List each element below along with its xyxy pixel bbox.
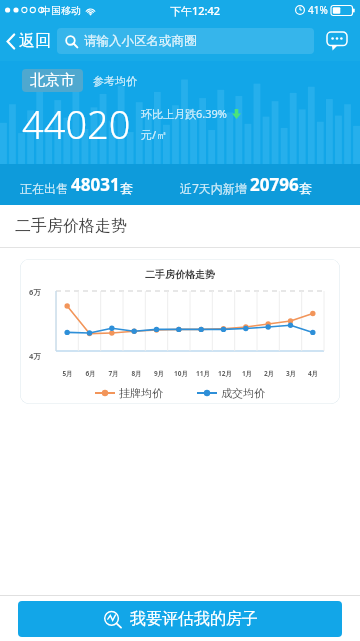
staticText: 请输入小区名或商圈: [84, 33, 197, 49]
staticText: 二手房价格走势: [20, 268, 340, 281]
staticText: 20796: [250, 173, 299, 196]
staticText: 10月: [170, 369, 192, 378]
staticText: 48031: [71, 173, 120, 196]
button[interactable]: 我要评估我的房子: [18, 601, 342, 637]
staticText: 环比上月跌6.39%: [141, 106, 227, 121]
staticText: 北京市: [30, 71, 75, 90]
staticText: 成交均价: [221, 386, 265, 400]
staticText: 我要评估我的房子: [130, 609, 258, 629]
button[interactable]: 近7天内新增: [180, 173, 360, 196]
staticText: 参考均价: [93, 74, 137, 88]
staticText: 正在出售: [20, 181, 68, 196]
staticText: 44020: [22, 98, 131, 150]
staticText: 8月: [125, 369, 148, 378]
button[interactable]: 消息: [322, 26, 352, 56]
staticText: 6万: [29, 287, 41, 297]
staticText: 12月: [214, 369, 236, 378]
staticText: 挂牌均价: [119, 386, 163, 400]
button[interactable]: 请输入小区名或商圈: [57, 28, 314, 54]
staticText: 7月: [102, 369, 125, 378]
staticText: 下午12:42: [170, 3, 221, 18]
staticText: 中国移动: [41, 4, 81, 17]
staticText: 4万: [29, 351, 41, 361]
staticText: 套: [120, 180, 133, 196]
staticText: 2月: [258, 369, 280, 378]
staticText: 9月: [148, 369, 170, 378]
staticText: 返回: [19, 31, 51, 51]
staticText: 41%: [308, 3, 328, 17]
button[interactable]: 二手房价格走势: [20, 259, 340, 404]
staticText: 6月: [79, 369, 102, 378]
staticText: 1月: [236, 369, 258, 378]
staticText: 元/㎡: [141, 127, 168, 142]
staticText: 3月: [280, 369, 302, 378]
button[interactable]: 二手房价格走势: [0, 205, 360, 247]
staticText: 11月: [192, 369, 214, 378]
button[interactable]: 返回: [0, 25, 57, 57]
button[interactable]: 北京市: [22, 69, 83, 92]
staticText: 套: [299, 180, 312, 196]
staticText: 二手房价格走势: [15, 216, 127, 236]
staticText: 4月: [302, 369, 324, 378]
staticText: 5月: [56, 369, 79, 378]
button[interactable]: 正在出售: [0, 173, 180, 196]
staticText: 近7天内新增: [180, 180, 247, 196]
